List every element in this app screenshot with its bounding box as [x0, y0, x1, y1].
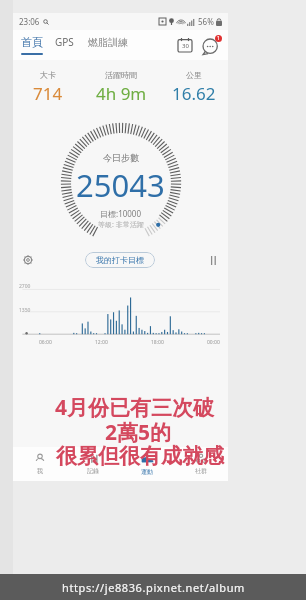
- staticText: 16.62: [172, 82, 216, 105]
- button[interactable]: 公里: [160, 70, 228, 105]
- button[interactable]: 我的打卡目標: [85, 252, 155, 268]
- button[interactable]: 首頁: [21, 35, 43, 55]
- staticText: 大卡: [40, 70, 56, 80]
- staticText: 活躍時間: [105, 70, 137, 80]
- button[interactable]: 社群: [174, 447, 228, 481]
- button[interactable]: 運動: [120, 447, 174, 481]
- staticText: 56%: [198, 16, 214, 27]
- staticText: 很累但很有成就感: [56, 443, 224, 469]
- staticText: GPS: [55, 35, 74, 49]
- staticText: 06:00: [39, 339, 52, 346]
- staticText: 社群: [195, 467, 207, 475]
- staticText: 12:00: [95, 339, 108, 346]
- staticText: 18:00: [151, 339, 164, 346]
- button[interactable]: Messages: [202, 35, 222, 55]
- staticText: 1350: [19, 307, 31, 314]
- staticText: 目標:10000: [100, 208, 142, 219]
- staticText: 4h 9m: [96, 82, 147, 105]
- staticText: 等級: 非常活躍: [98, 220, 144, 230]
- staticText: 30: [182, 42, 189, 50]
- button[interactable]: 燃脂訓練: [88, 36, 128, 55]
- button[interactable]: 活躍時間: [82, 70, 160, 105]
- staticText: 23:06: [19, 16, 40, 27]
- staticText: 2700: [19, 283, 31, 290]
- staticText: 714: [33, 82, 63, 105]
- staticText: 記錄: [87, 467, 99, 475]
- staticText: 運動: [141, 468, 153, 476]
- staticText: 今日步數: [103, 152, 139, 163]
- staticText: 首頁: [21, 35, 43, 49]
- button[interactable]: 記錄: [66, 447, 120, 481]
- button[interactable]: Settings: [20, 252, 36, 268]
- staticText: 1: [217, 35, 220, 42]
- staticText: 公里: [186, 70, 202, 80]
- staticText: 我的打卡目標: [96, 255, 144, 265]
- staticText: 00:00: [207, 339, 220, 346]
- staticText: 2萬5的: [105, 418, 172, 447]
- staticText: 4月份已有三次破: [55, 393, 215, 422]
- button[interactable]: 大卡: [13, 70, 82, 105]
- staticText: 我: [37, 467, 43, 475]
- staticText: https://je8836.pixnet.net/album: [62, 580, 245, 595]
- button[interactable]: GPS: [55, 35, 74, 55]
- button[interactable]: Pause: [205, 252, 221, 268]
- button[interactable]: 我: [13, 447, 66, 481]
- staticText: 燃脂訓練: [88, 36, 128, 49]
- button[interactable]: Calendar: [176, 36, 194, 54]
- staticText: 25043: [76, 164, 165, 206]
